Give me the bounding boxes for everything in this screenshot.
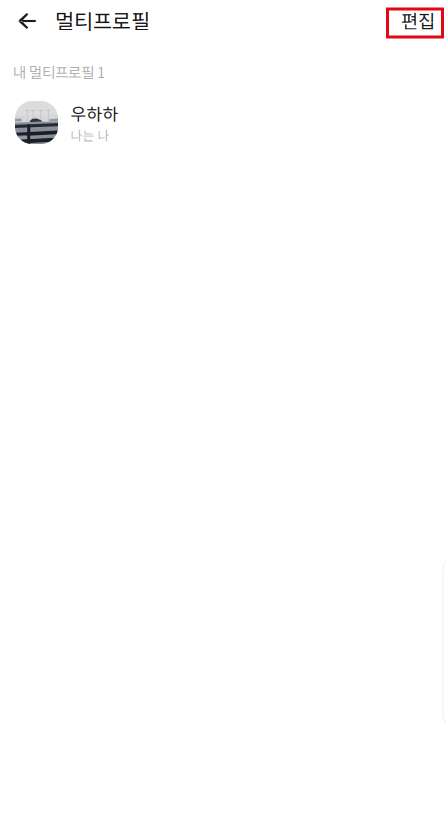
staticText: 멀티프로필	[55, 5, 150, 35]
button[interactable]: 편집	[386, 1, 444, 45]
button[interactable]: 우하하	[0, 91, 446, 154]
staticText: 내 멀티프로필 1	[13, 61, 105, 82]
staticText: 나는 나	[70, 126, 109, 144]
staticText: 우하하	[70, 101, 118, 126]
button[interactable]: Back	[5, 0, 49, 43]
staticText: 편집	[401, 6, 435, 33]
